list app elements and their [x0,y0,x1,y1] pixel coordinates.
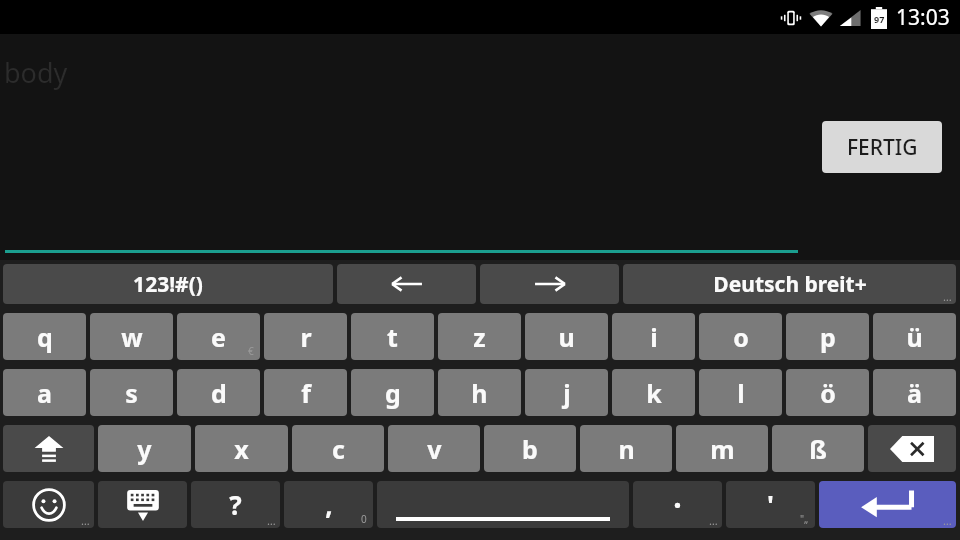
button[interactable]: Backspace [868,425,956,472]
staticText: v [427,432,442,466]
staticText: … [81,513,90,528]
button[interactable]: c [292,425,384,472]
staticText: , [325,487,333,522]
button[interactable]: e [177,313,260,360]
button[interactable]: q [3,313,86,360]
staticText: p [820,320,836,354]
staticText: w [121,320,143,354]
button[interactable]: t [351,313,434,360]
staticText: "„ [800,512,809,526]
staticText: d [211,376,227,410]
button[interactable]: r [264,313,347,360]
button[interactable]: Enter [819,481,956,528]
button[interactable]: o [699,313,782,360]
button[interactable]: ' [726,481,815,528]
button[interactable]: i [612,313,695,360]
staticText: Deutsch breit+ [713,270,867,299]
button[interactable]: Move cursor right [480,264,619,304]
button[interactable]: ? [191,481,280,528]
staticText: t [387,320,398,354]
staticText: 123!#() [133,270,203,299]
staticText: … [943,513,952,528]
button[interactable]: ö [786,369,869,416]
staticText: … [709,513,718,528]
staticText: q [37,320,53,354]
staticText: body [4,54,68,91]
staticText: b [522,432,538,466]
staticText: j [563,376,571,410]
staticText: m [710,432,735,466]
button[interactable]: j [525,369,608,416]
staticText: z [473,320,486,354]
staticText: … [267,513,276,528]
staticText: · [673,484,682,525]
staticText: c [332,432,345,466]
button[interactable]: s [90,369,173,416]
staticText: o [733,320,749,354]
button[interactable]: ü [873,313,956,360]
button[interactable]: v [388,425,480,472]
button[interactable]: k [612,369,695,416]
button[interactable]: ß [772,425,864,472]
button[interactable]: p [786,313,869,360]
staticText: ä [907,376,922,410]
button[interactable]: h [438,369,521,416]
button[interactable]: b [484,425,576,472]
button[interactable]: Emoji [3,481,94,528]
button[interactable]: · [633,481,722,528]
button[interactable]: g [351,369,434,416]
button[interactable]: Move cursor left [337,264,476,304]
staticText: g [385,376,401,410]
staticText: x [234,432,249,466]
button[interactable]: 123!#() [3,264,333,304]
staticText: r [300,320,312,354]
button[interactable]: Shift [3,425,94,472]
button[interactable]: m [676,425,768,472]
staticText: k [646,376,662,410]
button[interactable]: a [3,369,86,416]
button[interactable]: w [90,313,173,360]
staticText: 13:03 [896,3,950,32]
staticText: u [558,320,575,354]
button[interactable]: Hide keyboard [98,481,187,528]
button[interactable]: u [525,313,608,360]
button[interactable]: f [264,369,347,416]
button[interactable]: z [438,313,521,360]
button[interactable]: Deutsch breit+ [623,264,956,304]
staticText: y [137,432,152,466]
staticText: ü [906,320,923,354]
staticText: n [618,432,635,466]
button[interactable]: FERTIG [822,121,942,173]
staticText: e [211,320,226,354]
staticText: FERTIG [847,133,918,162]
staticText: ß [809,432,827,466]
staticText: i [650,320,658,354]
staticText: a [37,376,52,410]
button[interactable]: l [699,369,782,416]
staticText: ? [229,487,242,522]
staticText: s [125,376,138,410]
button[interactable]: d [177,369,260,416]
button[interactable]: x [195,425,288,472]
staticText: ' [767,487,774,522]
staticText: ö [820,376,836,410]
button[interactable]: y [98,425,191,472]
button[interactable]: ä [873,369,956,416]
button[interactable]: , [284,481,373,528]
staticText: 97 [874,13,885,25]
staticText: € [248,344,254,358]
staticText: h [471,376,488,410]
staticText: l [737,376,745,410]
button[interactable]: n [580,425,672,472]
staticText: … [943,289,952,304]
button[interactable]: Space [377,481,629,528]
staticText: 0 [361,512,367,526]
staticText: f [301,376,311,410]
